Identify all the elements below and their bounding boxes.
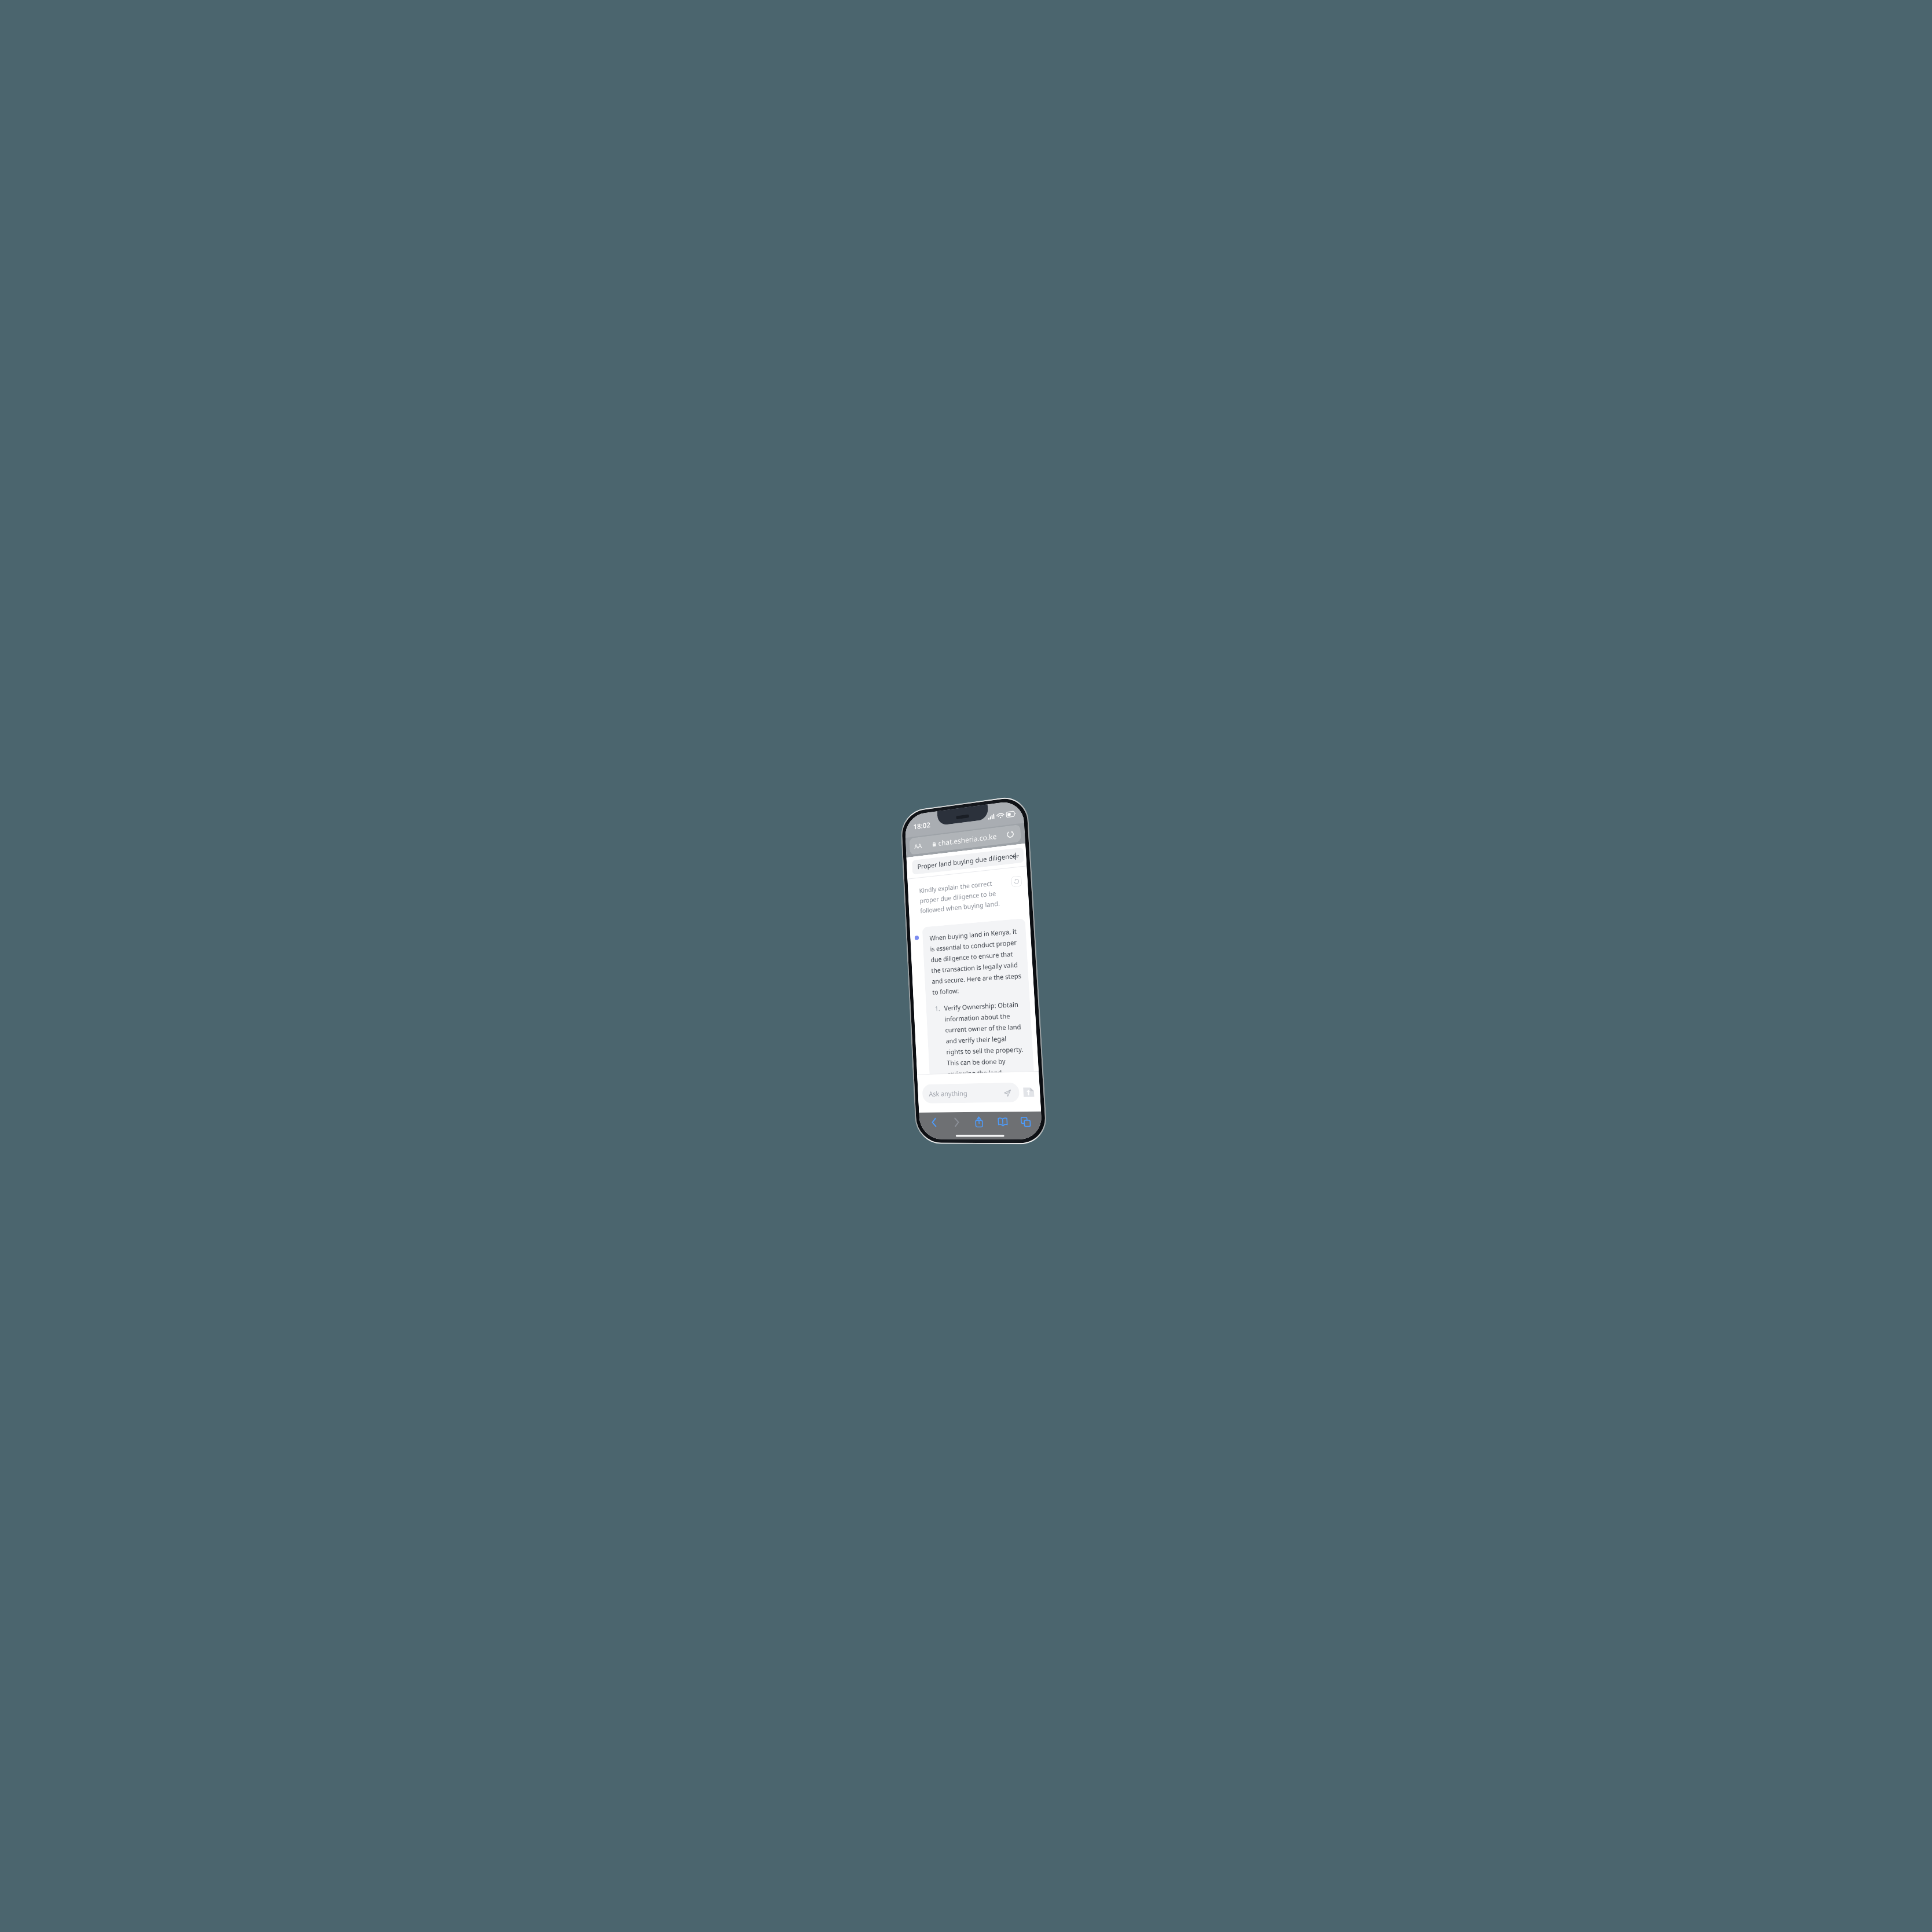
- staticText: Kindly explain the correct proper due di…: [919, 877, 1008, 915]
- button[interactable]: Menu: [909, 859, 924, 875]
- staticText: 18:02: [913, 820, 931, 832]
- staticText: 1.: [935, 1004, 944, 1013]
- staticText: AA: [914, 841, 922, 850]
- button[interactable]: Share: [969, 1114, 989, 1130]
- staticText: chat.esheria.co.ke: [938, 831, 997, 848]
- button[interactable]: Back: [924, 1115, 944, 1130]
- staticText: Proper land buying due diligence.: [917, 851, 1018, 871]
- button[interactable]: New chat: [1007, 847, 1023, 864]
- staticText: When buying land in Kenya, it is essenti…: [929, 926, 1023, 996]
- button[interactable]: Tabs: [1015, 1114, 1036, 1130]
- button[interactable]: Reload: [1004, 828, 1016, 841]
- staticText: Verify Ownership: Obtain information abo…: [944, 999, 1028, 1074]
- button[interactable]: Upload file: [1022, 1084, 1036, 1100]
- button[interactable]: Forward: [947, 1115, 967, 1130]
- button[interactable]: Ask anything: [922, 1082, 1020, 1103]
- button[interactable]: AA: [909, 824, 1021, 855]
- staticText: Ask anything: [929, 1089, 968, 1099]
- button[interactable]: Bookmarks: [992, 1114, 1013, 1130]
- button[interactable]: Send: [1002, 1087, 1013, 1098]
- button[interactable]: Proper land buying due diligence.: [912, 847, 1024, 875]
- button[interactable]: Regenerate: [1011, 876, 1022, 887]
